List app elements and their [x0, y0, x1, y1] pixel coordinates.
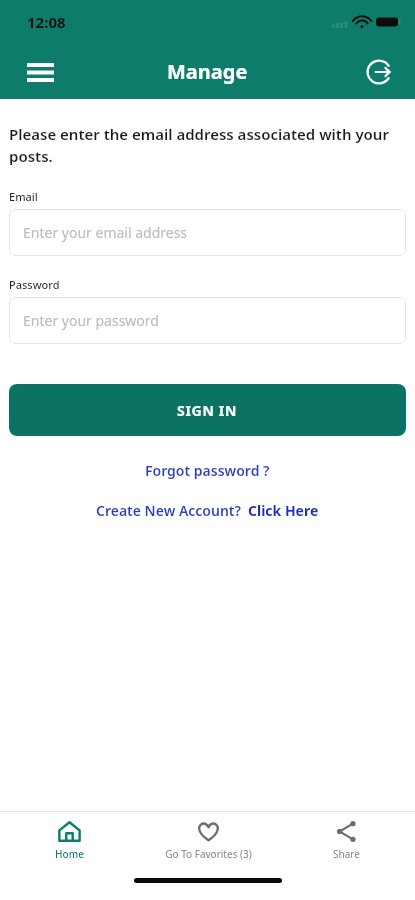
button[interactable]: Home — [0, 812, 139, 868]
staticText: 12:08 — [27, 12, 66, 32]
staticText: Create New Account? — [96, 501, 241, 520]
staticText: Go To Favorites (3) — [165, 847, 252, 861]
staticText: SIGN IN — [177, 401, 238, 420]
button[interactable]: Enter your email address — [9, 209, 406, 256]
button[interactable]: Share — [277, 812, 415, 868]
staticText: Please enter the email address associate… — [9, 124, 406, 167]
button[interactable]: Menu — [18, 50, 62, 94]
staticText: Home — [55, 847, 84, 861]
button[interactable]: Go To Favorites (3) — [139, 812, 277, 868]
button[interactable]: Enter your password — [9, 297, 406, 344]
staticText: Click Here — [248, 501, 319, 520]
staticText: Enter your email address — [23, 223, 188, 242]
staticText: Forgot password ? — [145, 461, 270, 480]
staticText: Share — [333, 847, 360, 861]
button[interactable]: SIGN IN — [9, 384, 406, 436]
staticText: Password — [9, 277, 60, 292]
button[interactable]: Forgot password ? — [135, 457, 280, 484]
button[interactable]: Create New Account? — [90, 498, 325, 523]
button[interactable]: Log out — [357, 50, 401, 94]
staticText: Email — [9, 189, 38, 204]
staticText: Enter your password — [23, 311, 159, 330]
staticText: Manage — [167, 58, 248, 85]
